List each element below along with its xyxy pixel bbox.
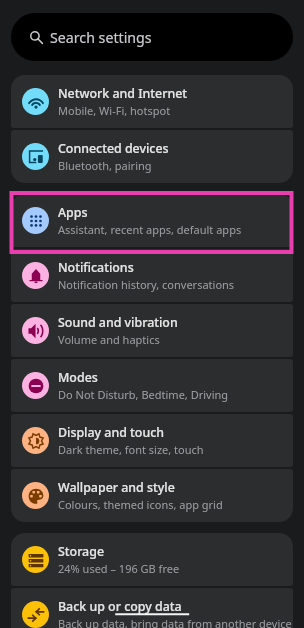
staticText: Wallpaper and style [58,479,175,496]
staticText: Back up data, bring data from another de… [58,616,292,628]
staticText: Colours, themed icons, app grid [58,497,223,512]
staticText: Bluetooth, pairing [58,158,152,173]
staticText: Dark theme, font size, touch [58,442,204,457]
staticText: Sound and vibration [58,314,178,331]
button[interactable]: Modes [11,359,293,412]
button[interactable]: Display and touch [11,414,293,467]
staticText: Assistant, recent apps, default apps [58,222,242,237]
button[interactable]: Notifications [11,249,293,302]
staticText: Notifications [58,259,134,276]
button[interactable]: Sound and vibration [11,304,293,357]
button[interactable]: Apps [11,194,293,247]
button[interactable]: Connected devices [11,130,293,183]
staticText: Back up or copy data [58,598,182,615]
button[interactable]: Wallpaper and style [11,469,293,522]
button[interactable]: Back up or copy data [11,588,293,628]
staticText: Volume and haptics [58,332,160,347]
staticText: Display and touch [58,424,165,441]
staticText: Do Not Disturb, Bedtime, Driving [58,387,229,402]
button[interactable]: Storage [11,533,293,586]
staticText: Modes [58,369,98,386]
button[interactable]: Search settings [11,13,293,61]
staticText: Network and Internet [58,85,188,102]
staticText: 24% used – 196 GB free [58,561,180,576]
staticText: Apps [58,204,88,221]
staticText: Notification history, conversations [58,277,235,292]
button[interactable]: Network and Internet [11,75,293,128]
staticText: Connected devices [58,140,169,157]
staticText: Search settings [50,28,152,47]
staticText: Mobile, Wi-Fi, hotspot [58,103,171,118]
staticText: Storage [58,543,105,560]
